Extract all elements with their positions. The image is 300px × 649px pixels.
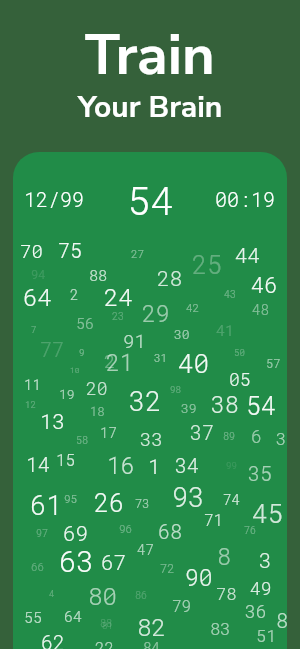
button[interactable]: 91 bbox=[123, 328, 146, 353]
button[interactable]: 10 bbox=[70, 365, 80, 376]
button[interactable]: 30 bbox=[174, 325, 190, 342]
button[interactable]: 88 bbox=[100, 617, 113, 630]
button[interactable]: 76 bbox=[244, 524, 257, 537]
button[interactable]: 27 bbox=[131, 246, 145, 261]
button[interactable]: 68 bbox=[158, 518, 183, 544]
button[interactable]: 54 bbox=[246, 389, 277, 422]
button[interactable]: 20 bbox=[86, 376, 108, 400]
button[interactable]: 66 bbox=[31, 559, 45, 574]
button[interactable]: 48 bbox=[252, 300, 269, 318]
button[interactable]: 29 bbox=[142, 298, 170, 328]
button[interactable]: 45 bbox=[252, 496, 284, 530]
button[interactable]: 21 bbox=[106, 347, 134, 377]
staticText: 69 bbox=[63, 519, 89, 547]
button[interactable]: 99 bbox=[226, 460, 237, 472]
button[interactable]: 42 bbox=[186, 300, 200, 315]
button[interactable]: 31 bbox=[154, 350, 168, 365]
button[interactable]: 12 bbox=[25, 399, 36, 411]
button[interactable]: 58 bbox=[76, 434, 89, 447]
button[interactable]: 73 bbox=[135, 495, 150, 511]
button[interactable]: 38 bbox=[211, 389, 239, 419]
button[interactable]: 61 bbox=[30, 487, 63, 523]
button[interactable]: 41 bbox=[216, 320, 235, 340]
button[interactable]: 57 bbox=[266, 355, 281, 371]
button[interactable]: 17 bbox=[100, 423, 117, 441]
button[interactable]: 9 bbox=[79, 347, 85, 359]
button[interactable]: 55 bbox=[24, 607, 43, 627]
button[interactable]: 15 bbox=[56, 449, 76, 470]
button[interactable]: 3 bbox=[259, 546, 272, 574]
button[interactable]: 74 bbox=[223, 490, 240, 508]
button[interactable]: 70 bbox=[20, 238, 43, 263]
button[interactable]: 28 bbox=[157, 264, 183, 292]
button[interactable]: 7 bbox=[31, 324, 37, 336]
button[interactable]: 98 bbox=[170, 384, 181, 396]
button[interactable]: 62 bbox=[41, 629, 66, 649]
button[interactable]: 43 bbox=[224, 288, 237, 301]
button[interactable]: 67 bbox=[101, 548, 127, 576]
button[interactable]: 93 bbox=[172, 479, 205, 515]
button[interactable]: 81 bbox=[102, 620, 113, 632]
button[interactable]: 46 bbox=[251, 270, 278, 299]
button[interactable]: 8 bbox=[276, 607, 287, 633]
button[interactable]: 49 bbox=[250, 576, 272, 600]
button[interactable]: 88 bbox=[89, 265, 108, 285]
button[interactable]: 71 bbox=[204, 509, 224, 530]
button[interactable]: 23 bbox=[112, 310, 125, 323]
button[interactable]: 14 bbox=[26, 451, 51, 477]
button[interactable]: 33 bbox=[140, 426, 163, 451]
button[interactable]: 2 bbox=[104, 348, 116, 373]
button[interactable]: 77 bbox=[40, 336, 65, 362]
button[interactable]: 26 bbox=[94, 486, 125, 519]
button[interactable]: 24 bbox=[104, 281, 133, 313]
button[interactable]: 89 bbox=[223, 430, 236, 443]
button[interactable]: 32 bbox=[129, 383, 162, 419]
button[interactable]: 34 bbox=[175, 452, 200, 478]
button[interactable]: 39 bbox=[181, 399, 197, 416]
button[interactable]: 82 bbox=[137, 611, 166, 643]
button[interactable]: 56 bbox=[76, 313, 95, 333]
button[interactable]: 2 bbox=[70, 285, 79, 303]
button[interactable]: 64 bbox=[23, 281, 52, 313]
button[interactable]: 25 bbox=[192, 248, 223, 281]
button[interactable]: 16 bbox=[107, 450, 135, 480]
button[interactable]: 22 bbox=[95, 637, 115, 649]
button[interactable]: 47 bbox=[137, 540, 154, 558]
button[interactable]: 86 bbox=[135, 589, 148, 602]
button[interactable]: 63 bbox=[59, 542, 94, 580]
button[interactable]: 80 bbox=[88, 580, 117, 612]
button[interactable]: 84 bbox=[143, 638, 160, 649]
button[interactable]: 6 bbox=[251, 424, 262, 448]
button[interactable]: 75 bbox=[58, 237, 83, 263]
staticText: 88 bbox=[100, 617, 113, 630]
button[interactable]: 94 bbox=[31, 266, 46, 282]
button[interactable]: 97 bbox=[36, 527, 49, 540]
button[interactable]: 00:19 bbox=[215, 186, 276, 212]
button[interactable]: 79 bbox=[172, 595, 192, 616]
button[interactable]: 95 bbox=[64, 491, 78, 506]
button[interactable]: 36 bbox=[245, 599, 267, 623]
button[interactable]: 18 bbox=[90, 403, 105, 419]
button[interactable]: 37 bbox=[190, 419, 215, 445]
button[interactable]: 40 bbox=[178, 346, 210, 380]
button[interactable]: 4 bbox=[49, 588, 55, 600]
button[interactable]: 72 bbox=[160, 560, 175, 576]
button[interactable]: 1 bbox=[148, 452, 161, 480]
button[interactable]: 90 bbox=[185, 562, 213, 592]
button[interactable]: 64 bbox=[64, 606, 83, 626]
button[interactable]: 78 bbox=[216, 582, 237, 604]
button[interactable]: 50 bbox=[234, 347, 245, 359]
button[interactable]: 3 bbox=[276, 427, 287, 449]
button[interactable]: 83 bbox=[210, 617, 231, 639]
button[interactable]: 05 bbox=[229, 367, 251, 391]
button[interactable]: 96 bbox=[119, 521, 133, 536]
button[interactable]: 35 bbox=[248, 460, 273, 486]
button[interactable]: 69 bbox=[63, 519, 89, 547]
button[interactable]: 11 bbox=[24, 375, 41, 393]
button[interactable]: 19 bbox=[59, 385, 75, 402]
button[interactable]: 51 bbox=[256, 624, 277, 646]
button[interactable]: 12/99 bbox=[24, 186, 85, 212]
button[interactable]: 8 bbox=[217, 541, 231, 571]
button[interactable]: 44 bbox=[235, 241, 261, 269]
button[interactable]: 13 bbox=[40, 407, 66, 435]
